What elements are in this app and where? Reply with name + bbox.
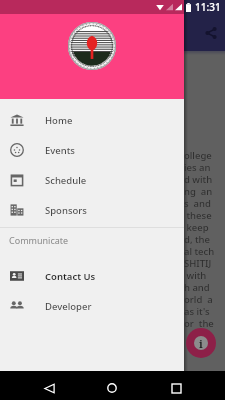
staticText: as it's [184, 305, 210, 317]
staticText: s and [184, 197, 211, 209]
staticText: al tech [184, 245, 215, 257]
button[interactable]: Share [199, 21, 223, 45]
button[interactable]: Contact Us [0, 261, 184, 291]
staticText: ng an [184, 185, 213, 197]
staticText: with [184, 269, 207, 281]
staticText: Home [45, 114, 73, 127]
button[interactable]: Schedule [0, 165, 184, 195]
staticText: Contact Us [45, 270, 96, 283]
button[interactable]: Sponsors [0, 195, 184, 225]
staticText: d with [184, 173, 213, 185]
staticText: Sponsors [45, 204, 87, 217]
button[interactable]: Events [0, 135, 184, 165]
staticText: ies an [184, 161, 211, 173]
staticText: Schedule [45, 174, 87, 187]
staticText: 11:31 [195, 0, 221, 14]
button[interactable]: Recents [162, 374, 190, 400]
staticText: keep [184, 221, 209, 233]
staticText: these [184, 209, 212, 221]
staticText: orld a [184, 293, 213, 305]
button[interactable]: Developer [0, 291, 184, 321]
staticText: i [199, 336, 203, 350]
staticText: ollege [184, 149, 212, 161]
staticText: SHITIJ [184, 257, 212, 269]
staticText: Communicate [9, 234, 69, 246]
staticText: d, the [184, 233, 211, 245]
staticText: h and [184, 281, 210, 293]
staticText: Developer [45, 300, 92, 313]
button[interactable]: Info [186, 328, 216, 358]
button[interactable]: Home [98, 374, 126, 400]
staticText: Events [45, 144, 75, 157]
button[interactable]: Home [0, 105, 184, 135]
staticText: or the [184, 317, 214, 329]
button[interactable]: Back [35, 374, 63, 400]
